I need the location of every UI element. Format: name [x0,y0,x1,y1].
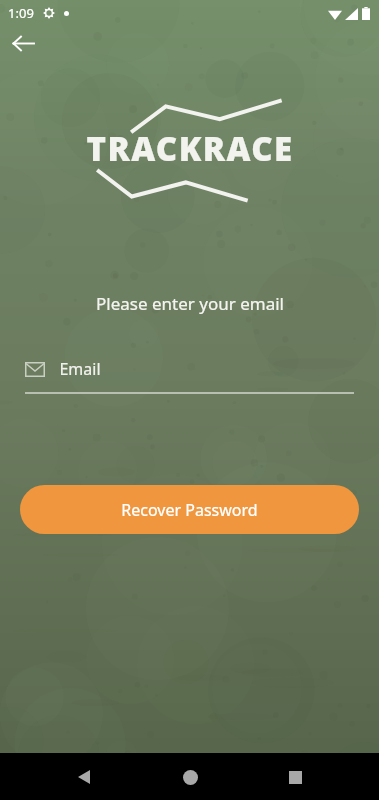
button[interactable]: Home [168,755,212,799]
button[interactable]: Recent apps [273,755,317,799]
staticText: TRACKRACE [86,126,294,171]
button[interactable]: Back [6,26,40,60]
button[interactable]: Recover Password [20,485,359,534]
button[interactable]: Back [62,755,106,799]
staticText: Please enter your email [96,292,284,315]
button[interactable]: Email [25,358,354,394]
staticText: Recover Password [121,499,258,521]
staticText: 1:09 [8,4,34,22]
staticText: Email [59,358,101,380]
